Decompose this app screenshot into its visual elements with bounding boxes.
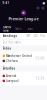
staticText: Pts [40, 34, 44, 38]
staticText: 15:00 [35, 57, 44, 60]
staticText: Manchester United [6, 54, 32, 58]
staticText: Standings [2, 34, 16, 38]
button[interactable]: See full table [0, 39, 47, 45]
button[interactable]: Search [36, 6, 39, 9]
button[interactable]: Overview [1, 26, 13, 33]
button[interactable]: Manchester United [0, 51, 47, 65]
staticText: Arsenal [6, 74, 16, 78]
staticText: Premier League [8, 16, 38, 21]
staticText: Today [2, 47, 10, 50]
button[interactable]: Arsenal [0, 71, 47, 85]
staticText: Stats [27, 27, 32, 31]
button[interactable]: Table [13, 26, 24, 33]
staticText: 12:30 [35, 77, 44, 80]
staticText: MP [26, 34, 30, 38]
staticText: Chelsea [6, 59, 17, 63]
staticText: Saturday [2, 67, 14, 70]
staticText: ▮▮ [42, 1, 44, 4]
staticText: Overview [3, 25, 11, 32]
staticText: See full table [2, 41, 21, 44]
staticText: 9:41 [2, 1, 9, 5]
staticText: Table [15, 27, 22, 31]
staticText: Liverpool [6, 79, 19, 83]
button[interactable]: Stats [24, 26, 36, 33]
staticText: GD [33, 34, 37, 38]
button[interactable]: More options [41, 6, 44, 9]
